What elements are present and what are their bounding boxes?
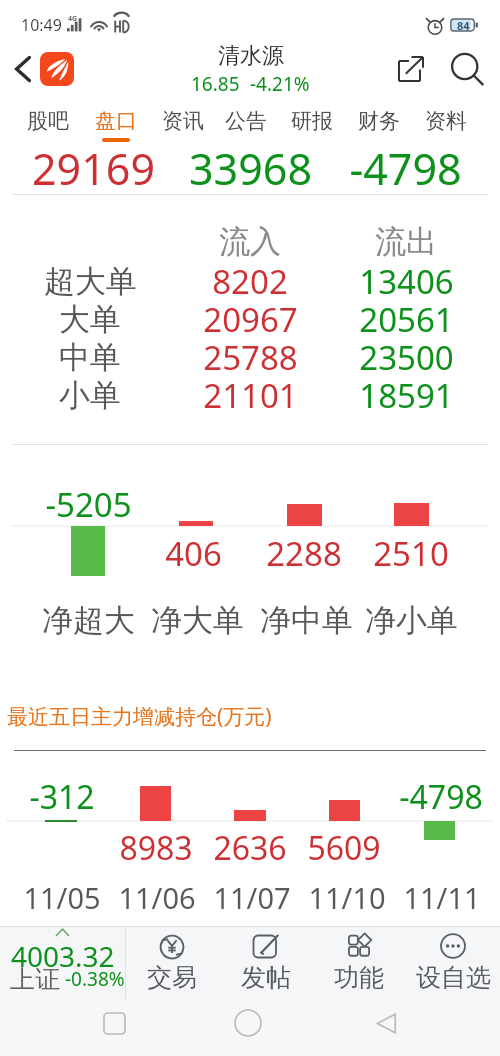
staticText: 净中单 — [260, 601, 353, 640]
staticText: 资料 — [425, 108, 467, 134]
staticText: 小单 — [59, 376, 121, 415]
staticText: 20967 — [203, 297, 298, 342]
button[interactable]: Back — [4, 50, 42, 88]
staticText: 设自选 — [416, 962, 491, 993]
staticText: 11/11 — [403, 878, 481, 917]
staticText: 2510 — [373, 531, 449, 576]
staticText: -5205 — [45, 482, 132, 527]
staticText: 11/06 — [118, 878, 196, 917]
staticText: 11/05 — [23, 878, 101, 917]
staticText: 11/07 — [213, 878, 291, 917]
staticText: 发帖 — [241, 962, 291, 993]
staticText: 23500 — [359, 335, 454, 380]
staticText: 交易 — [147, 962, 197, 993]
button[interactable]: Search — [444, 47, 488, 91]
button[interactable]: Back — [346, 1000, 426, 1056]
staticText: 2288 — [266, 531, 342, 576]
staticText: 8202 — [212, 259, 288, 304]
button[interactable]: 发帖 — [221, 926, 311, 1000]
staticText: 最近五日主力增减持仓(万元) — [7, 702, 272, 731]
staticText: 16.85 — [191, 71, 240, 97]
button[interactable]: 盘口 — [83, 100, 149, 146]
staticText: 上证 — [10, 964, 60, 995]
staticText: 资讯 — [162, 108, 204, 134]
staticText: 29169 — [32, 139, 155, 198]
staticText: 超大单 — [44, 262, 137, 301]
staticText: 84 — [457, 18, 470, 33]
staticText: -312 — [29, 775, 95, 819]
button[interactable]: Home — [208, 1000, 288, 1056]
button[interactable]: Share — [391, 49, 431, 89]
staticText: 净超大 — [42, 601, 135, 640]
button[interactable]: Recent apps — [74, 1000, 154, 1056]
staticText: -4798 — [349, 139, 462, 198]
staticText: 10:49 — [21, 14, 62, 36]
staticText: 21101 — [203, 373, 298, 418]
button[interactable]: 财务 — [346, 100, 412, 146]
button[interactable]: Tonghuashun home — [40, 52, 74, 86]
button[interactable]: 设自选 — [408, 926, 498, 1000]
button[interactable]: 4003.32 — [0, 926, 126, 1000]
button[interactable]: 公告 — [213, 100, 279, 146]
staticText: 25788 — [203, 335, 298, 380]
other: Alarm — [426, 15, 444, 35]
button[interactable]: 功能 — [314, 926, 404, 1000]
staticText: 5609 — [307, 826, 381, 870]
button[interactable]: 股吧 — [15, 100, 81, 146]
staticText: 406 — [165, 531, 222, 576]
staticText: 8983 — [119, 826, 193, 870]
staticText: 流出 — [375, 222, 437, 261]
staticText: 大单 — [59, 300, 121, 339]
staticText: 股吧 — [27, 108, 69, 134]
staticText: 13406 — [359, 259, 454, 304]
staticText: 33968 — [189, 139, 312, 198]
staticText: 流入 — [219, 222, 281, 261]
staticText: -4798 — [399, 775, 483, 819]
button[interactable]: 研报 — [279, 100, 345, 146]
staticText: 公告 — [225, 108, 267, 134]
staticText: 清水源 — [218, 42, 284, 70]
button[interactable]: 资料 — [413, 100, 479, 146]
staticText: 盘口 — [95, 108, 137, 134]
staticText: 财务 — [358, 108, 400, 134]
staticText: 净大单 — [151, 601, 244, 640]
staticText: 4003.32 — [11, 937, 115, 975]
staticText: 功能 — [334, 962, 384, 993]
staticText: 11/10 — [308, 878, 386, 917]
staticText: 20561 — [359, 297, 454, 342]
staticText: 研报 — [291, 108, 333, 134]
staticText: -0.38% — [65, 966, 125, 992]
staticText: 中单 — [59, 338, 121, 377]
staticText: 2636 — [213, 826, 287, 870]
button[interactable]: 交易 — [127, 926, 217, 1000]
button[interactable]: 资讯 — [150, 100, 216, 146]
staticText: 18591 — [359, 373, 454, 418]
staticText: 4G — [68, 14, 78, 24]
staticText: 净小单 — [365, 601, 458, 640]
staticText: -4.21% — [250, 71, 310, 97]
